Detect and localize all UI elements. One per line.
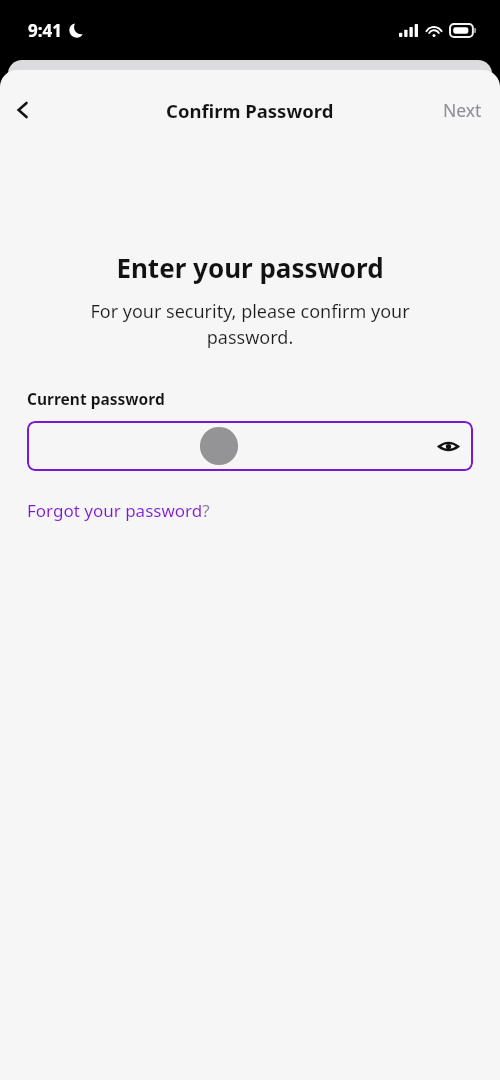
button[interactable]: Show password (27, 421, 473, 471)
staticText: Current password (27, 388, 165, 409)
staticText: Forgot your password? (27, 499, 210, 522)
staticText: Next (443, 98, 482, 122)
staticText: Enter your password (0, 250, 500, 285)
button[interactable]: Back (0, 87, 46, 133)
button[interactable]: Show password (431, 429, 465, 463)
button[interactable]: Forgot your password? (27, 499, 210, 522)
staticText: Confirm Password (166, 98, 334, 123)
staticText: 9:41 (28, 19, 62, 42)
staticText: For your security, please confirm your p… (58, 299, 442, 349)
button[interactable]: Next (425, 88, 500, 132)
